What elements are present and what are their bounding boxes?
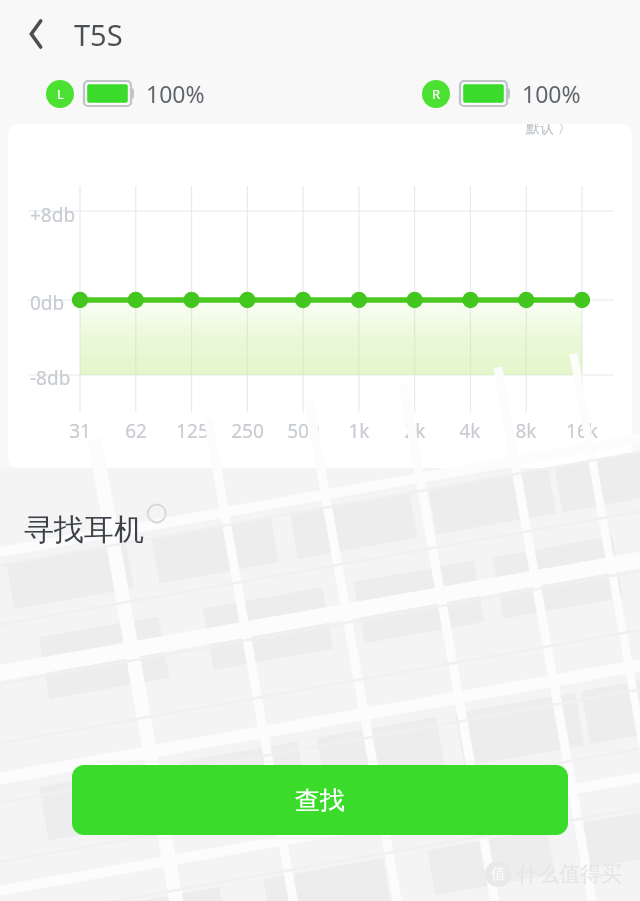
staticText: R	[432, 85, 441, 103]
staticText: 1k	[348, 418, 370, 444]
staticText: 125	[176, 418, 209, 444]
staticText: 什么值得买	[517, 861, 622, 887]
staticText: 62	[125, 418, 147, 444]
staticText: 0db	[30, 290, 65, 316]
button[interactable]: Back	[14, 12, 58, 56]
staticText: 250	[231, 418, 264, 444]
staticText: 100%	[522, 78, 581, 109]
button[interactable]: 默认 〉	[8, 124, 632, 468]
button[interactable]: R	[422, 78, 581, 109]
staticText: -8db	[30, 365, 71, 391]
staticText: 4k	[459, 418, 481, 444]
staticText: L	[57, 85, 64, 103]
staticText: +8db	[30, 202, 76, 228]
staticText: 查找	[295, 785, 345, 816]
staticText: 100%	[146, 78, 205, 109]
staticText: 500	[287, 418, 320, 444]
staticText: 寻找耳机	[24, 511, 144, 549]
staticText: 默认 〉	[526, 124, 572, 137]
staticText: 31	[69, 418, 91, 444]
staticText: 8k	[515, 418, 537, 444]
button[interactable]: L	[46, 78, 205, 109]
staticText: 值	[491, 865, 506, 884]
staticText: 16k	[566, 418, 598, 444]
staticText: T5S	[74, 15, 123, 54]
staticText: 2k	[404, 418, 426, 444]
button[interactable]: 查找	[72, 765, 568, 835]
